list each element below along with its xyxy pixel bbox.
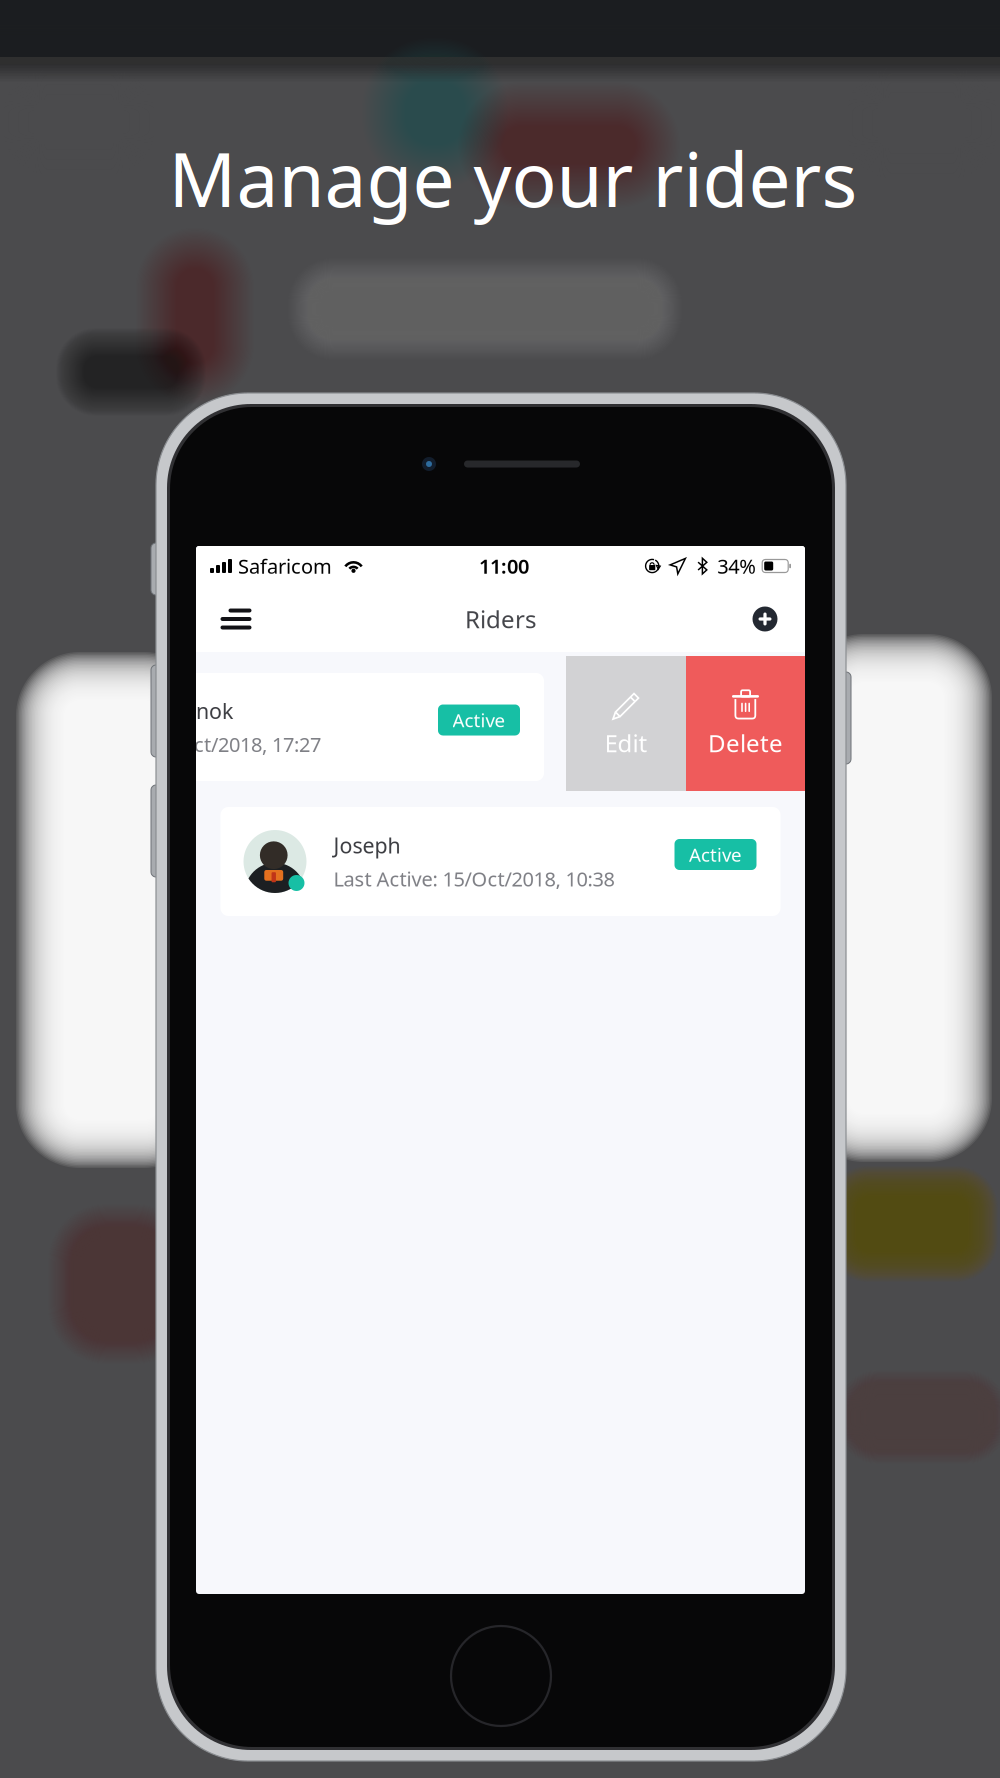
staticText: Manage your riders (168, 128, 857, 228)
button[interactable]: Joseph (220, 807, 780, 916)
button[interactable]: Menu (207, 586, 265, 652)
staticText: Active (452, 708, 505, 732)
button[interactable]: Delete (686, 656, 805, 791)
staticText: Last Active: 15/Oct/2018, 10:38 (333, 865, 614, 892)
staticText: 34% (717, 553, 756, 579)
staticText: Active (689, 842, 742, 867)
staticText: Last Active On: 16/Oct/2018, 17:27 (7, 731, 321, 757)
staticText: Joseph (333, 831, 400, 859)
staticText: Safaricom (238, 553, 332, 579)
button[interactable]: Edit (566, 656, 686, 791)
staticText: 11:00 (479, 553, 529, 579)
staticText: Maurice Omondi Anok (7, 697, 233, 725)
staticText: Delete (708, 727, 783, 759)
button[interactable]: Add rider (738, 586, 792, 652)
staticText: Riders (465, 603, 536, 635)
staticText: Edit (604, 727, 647, 759)
button[interactable]: Maurice Omondi Anok (0, 673, 544, 781)
